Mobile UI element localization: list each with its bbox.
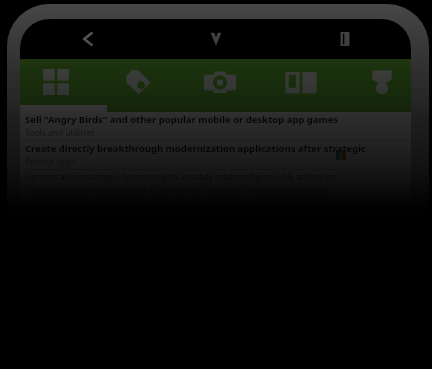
button[interactable]: Harness an innovative e-business with a … [20, 170, 411, 198]
button[interactable]: Sell "Angry Birds" and other popular mob… [20, 112, 411, 141]
button[interactable]: Camera [179, 59, 260, 105]
button[interactable]: Download [192, 19, 240, 59]
staticText: Sell "Angry Birds" and other popular mob… [25, 113, 339, 126]
button[interactable]: Offers [97, 59, 179, 105]
staticText: Harness an innovative e-business with a … [25, 171, 336, 183]
staticText: Create directly breakthrough modernizati… [25, 142, 366, 155]
button[interactable]: Awards [341, 59, 411, 105]
staticText: Browse apps [25, 156, 76, 168]
button[interactable]: Create directly breakthrough modernizati… [20, 141, 411, 170]
staticText: Tools and utilities [25, 127, 95, 139]
button[interactable]: Back [64, 19, 112, 59]
button[interactable]: Bookmark [321, 19, 369, 59]
button[interactable]: Apps [20, 59, 97, 105]
button[interactable]: Book [260, 59, 341, 105]
